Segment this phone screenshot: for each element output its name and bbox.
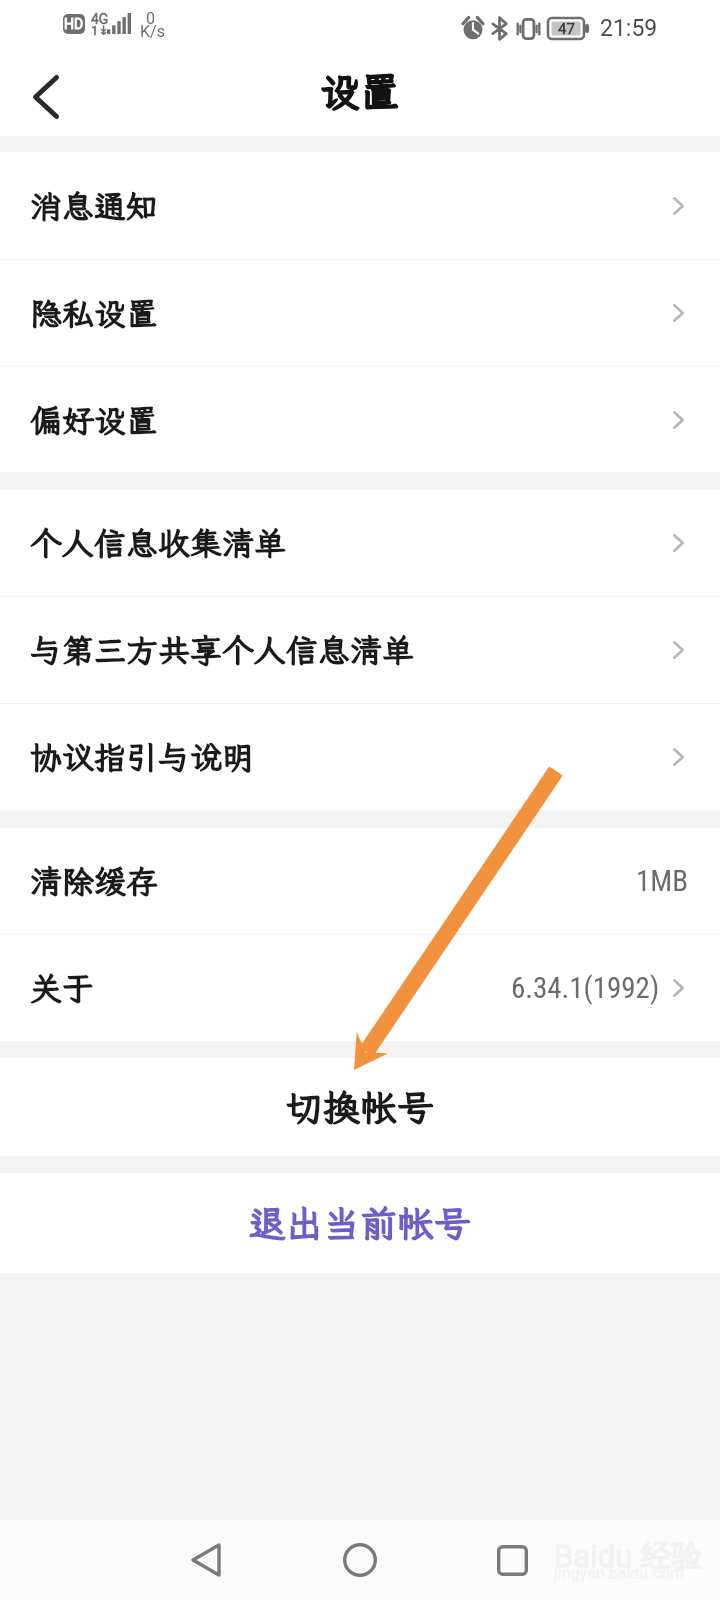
staticText: 隐私设置 xyxy=(30,292,159,334)
button[interactable]: 清除缓存 xyxy=(0,828,720,934)
staticText: 消息通知 xyxy=(30,185,159,227)
button[interactable]: 协议指引与说明 xyxy=(0,704,720,810)
staticText: 0 xyxy=(146,9,155,28)
staticText: 切换帐号 xyxy=(286,1083,434,1132)
staticText: 1MB xyxy=(636,864,689,898)
button[interactable]: 隐私设置 xyxy=(0,260,720,366)
staticText: 设置 xyxy=(320,65,400,118)
staticText: Baidu 经验 xyxy=(554,1537,702,1576)
staticText: 清除缓存 xyxy=(30,860,159,902)
staticText: 1↡ xyxy=(91,23,110,38)
staticText: 关于 xyxy=(30,967,95,1009)
button[interactable]: Home xyxy=(320,1520,400,1600)
staticText: 个人信息收集清单 xyxy=(30,522,287,564)
button[interactable]: Recents xyxy=(472,1520,552,1600)
button[interactable]: 个人信息收集清单 xyxy=(0,490,720,596)
staticText: 设置 xyxy=(320,65,400,118)
staticText: 6.34.1(1992) xyxy=(511,971,660,1005)
button[interactable]: Back xyxy=(166,1520,246,1600)
button[interactable]: 关于 xyxy=(0,935,720,1041)
staticText: 与第三方共享个人信息清单 xyxy=(30,629,415,671)
staticText: HD xyxy=(64,16,84,32)
button[interactable]: 偏好设置 xyxy=(0,367,720,472)
staticText: 偏好设置 xyxy=(30,399,159,441)
staticText: 4G xyxy=(91,11,109,27)
staticText: 退出当前帐号 xyxy=(249,1199,471,1248)
button[interactable]: 切换帐号 xyxy=(0,1058,720,1156)
button[interactable]: Back xyxy=(0,56,80,136)
staticText: K/s xyxy=(140,22,165,41)
staticText: 21:59 xyxy=(600,15,658,42)
staticText: jingyan.baidu.com xyxy=(554,1564,684,1583)
staticText: 47 xyxy=(558,20,575,38)
staticText: 协议指引与说明 xyxy=(30,736,255,778)
button[interactable]: 消息通知 xyxy=(0,152,720,259)
button[interactable]: 与第三方共享个人信息清单 xyxy=(0,597,720,703)
button[interactable]: 退出当前帐号 xyxy=(0,1173,720,1273)
